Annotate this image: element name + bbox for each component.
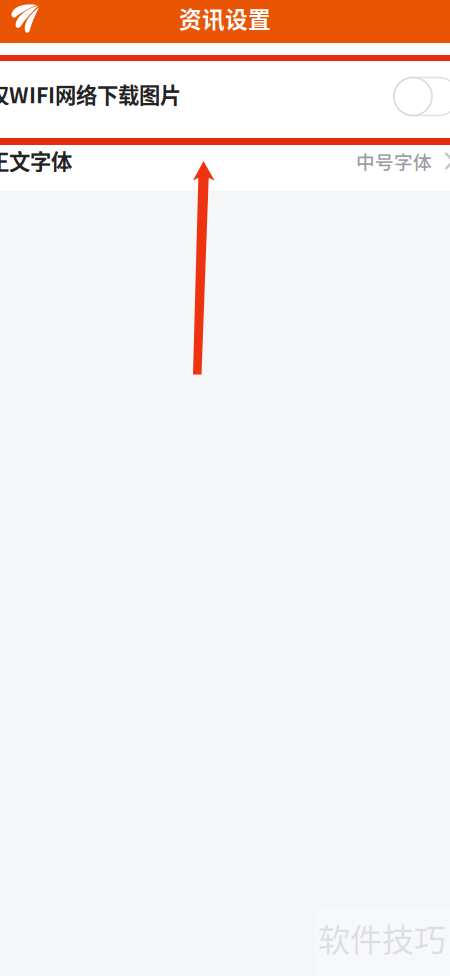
staticText: 正文字体 bbox=[0, 145, 72, 176]
button[interactable]: 正文字体 bbox=[0, 145, 450, 191]
staticText: 中号字体 bbox=[356, 147, 432, 174]
button[interactable]: App home bbox=[0, 0, 52, 43]
staticText: 仅WIFI网络下载图片 bbox=[0, 79, 181, 109]
staticText: 资讯设置 bbox=[179, 2, 271, 34]
staticText: 软件技巧 bbox=[318, 915, 446, 961]
button[interactable]: 仅WIFI网络下载图片 bbox=[0, 61, 450, 138]
